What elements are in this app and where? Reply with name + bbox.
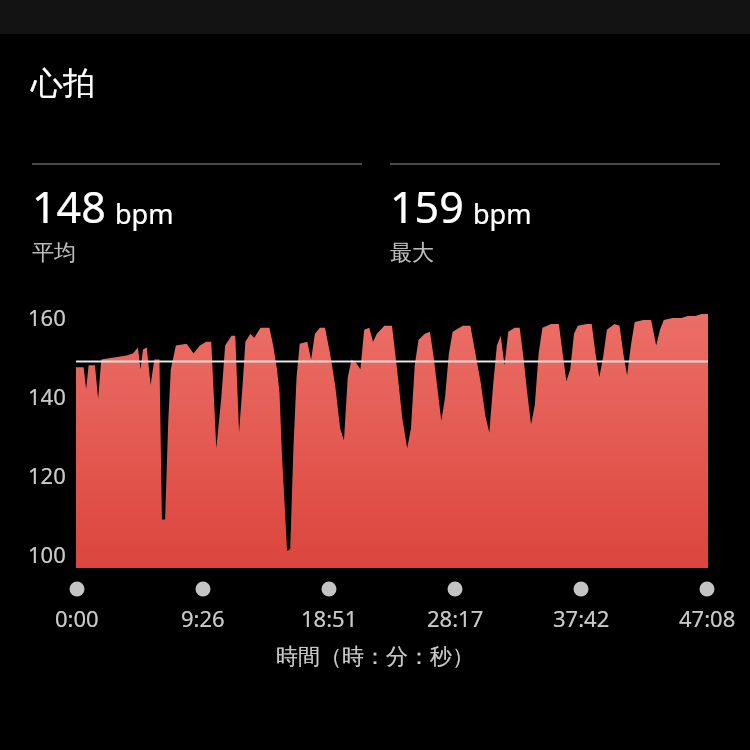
staticText: 18:51	[301, 603, 358, 633]
staticText: 9:26	[181, 603, 225, 633]
staticText: 140	[28, 381, 66, 411]
button[interactable]: 159	[390, 163, 720, 267]
button[interactable]: 148	[32, 163, 362, 267]
staticText: 100	[28, 539, 66, 569]
staticText: 28:17	[427, 603, 484, 633]
staticText: 平均	[32, 239, 76, 267]
staticText: 160	[28, 302, 66, 332]
staticText: bpm	[473, 195, 532, 232]
staticText: 159	[390, 177, 464, 236]
staticText: 148	[32, 177, 106, 236]
staticText: bpm	[115, 195, 174, 232]
staticText: 47:08	[679, 603, 736, 633]
staticText: 最大	[390, 239, 434, 267]
staticText: 37:42	[553, 603, 610, 633]
staticText: 0:00	[55, 603, 99, 633]
staticText: 120	[28, 460, 66, 490]
staticText: 心拍	[31, 63, 95, 103]
staticText: 時間（時：分：秒）	[0, 643, 750, 671]
